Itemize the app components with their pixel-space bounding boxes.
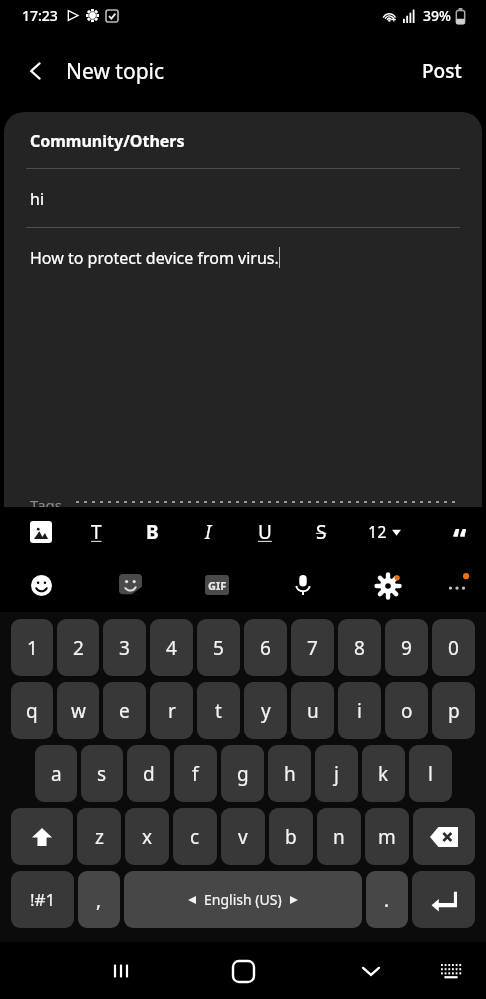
- button[interactable]: Home: [219, 947, 267, 995]
- button[interactable]: Recent apps: [98, 948, 144, 994]
- staticText: 9: [401, 635, 412, 661]
- button[interactable]: e: [103, 682, 146, 739]
- staticText: h: [284, 761, 296, 787]
- staticText: b: [285, 824, 297, 850]
- button[interactable]: 8: [338, 619, 381, 676]
- button[interactable]: u: [291, 682, 334, 739]
- button[interactable]: 3: [103, 619, 146, 676]
- button[interactable]: 5: [197, 619, 240, 676]
- staticText: q: [26, 698, 38, 724]
- staticText: o: [401, 698, 413, 724]
- button[interactable]: Post: [408, 48, 476, 94]
- button[interactable]: v: [221, 808, 265, 865]
- button[interactable]: 12: [362, 515, 407, 549]
- button[interactable]: 6: [244, 619, 287, 676]
- staticText: How to protect device from virus.: [30, 247, 279, 269]
- button[interactable]: Quote: [440, 512, 480, 552]
- button[interactable]: s: [81, 745, 123, 802]
- staticText: S: [316, 519, 327, 545]
- button[interactable]: Shift: [11, 808, 73, 865]
- staticText: e: [119, 698, 130, 724]
- button[interactable]: o: [385, 682, 428, 739]
- staticText: 39%: [423, 6, 451, 25]
- staticText: Post: [422, 58, 462, 84]
- staticText: 4: [166, 635, 177, 661]
- button[interactable]: 0: [432, 619, 475, 676]
- button[interactable]: h: [268, 745, 311, 802]
- button[interactable]: Insert image: [20, 511, 62, 553]
- button[interactable]: T: [75, 511, 117, 553]
- staticText: f: [192, 761, 199, 787]
- button[interactable]: Switch keyboard: [428, 948, 474, 994]
- button[interactable]: Back: [14, 49, 58, 93]
- staticText: v: [238, 824, 248, 850]
- button[interactable]: More options: [436, 564, 478, 606]
- button[interactable]: a: [35, 745, 77, 802]
- button[interactable]: f: [174, 745, 217, 802]
- button[interactable]: Delete: [413, 808, 475, 865]
- staticText: d: [143, 761, 155, 787]
- staticText: j: [334, 761, 339, 787]
- button[interactable]: Enter: [412, 871, 475, 928]
- button[interactable]: j: [315, 745, 358, 802]
- button[interactable]: p: [432, 682, 475, 739]
- staticText: p: [448, 698, 460, 724]
- button[interactable]: B: [131, 511, 173, 553]
- button[interactable]: GIF: [196, 564, 238, 606]
- staticText: n: [333, 824, 345, 850]
- button[interactable]: q: [11, 682, 53, 739]
- button[interactable]: l: [409, 745, 452, 802]
- button[interactable]: k: [362, 745, 405, 802]
- staticText: GIF: [208, 578, 227, 593]
- staticText: 1: [27, 635, 38, 661]
- staticText: c: [190, 824, 200, 850]
- staticText: 12: [368, 521, 387, 543]
- staticText: g: [237, 761, 249, 787]
- button[interactable]: 9: [385, 619, 428, 676]
- button[interactable]: U: [244, 511, 286, 553]
- button[interactable]: Stickers: [109, 564, 151, 606]
- button[interactable]: 4: [150, 619, 193, 676]
- staticText: y: [261, 698, 271, 724]
- button[interactable]: c: [173, 808, 217, 865]
- button[interactable]: d: [127, 745, 170, 802]
- button[interactable]: Hide keyboard: [348, 948, 394, 994]
- staticText: 8: [354, 635, 365, 661]
- staticText: l: [428, 761, 433, 787]
- button[interactable]: I: [187, 511, 229, 553]
- button[interactable]: .: [366, 871, 408, 928]
- button[interactable]: x: [125, 808, 169, 865]
- button[interactable]: 1: [11, 619, 53, 676]
- button[interactable]: Voice input: [282, 564, 324, 606]
- staticText: !#1: [30, 888, 56, 911]
- staticText: m: [378, 824, 396, 850]
- button[interactable]: S: [300, 511, 342, 553]
- button[interactable]: w: [57, 682, 99, 739]
- button[interactable]: 7: [291, 619, 334, 676]
- button[interactable]: Keyboard settings: [368, 564, 410, 606]
- button[interactable]: English (US): [124, 871, 362, 928]
- staticText: k: [378, 761, 389, 787]
- button[interactable]: m: [365, 808, 409, 865]
- button[interactable]: t: [197, 682, 240, 739]
- button[interactable]: Emoji: [20, 564, 62, 606]
- button[interactable]: n: [317, 808, 361, 865]
- staticText: Community/Others: [30, 130, 185, 152]
- staticText: 0: [448, 635, 459, 661]
- staticText: ,: [96, 887, 102, 913]
- button[interactable]: g: [221, 745, 264, 802]
- button[interactable]: r: [150, 682, 193, 739]
- button[interactable]: y: [244, 682, 287, 739]
- staticText: 5: [213, 635, 224, 661]
- staticText: hi: [30, 188, 45, 210]
- button[interactable]: 2: [57, 619, 99, 676]
- button[interactable]: z: [77, 808, 121, 865]
- staticText: z: [95, 824, 104, 850]
- staticText: x: [142, 824, 153, 850]
- staticText: 2: [73, 635, 84, 661]
- button[interactable]: i: [338, 682, 381, 739]
- button[interactable]: !#1: [11, 871, 74, 928]
- button[interactable]: ,: [78, 871, 120, 928]
- staticText: U: [258, 519, 272, 545]
- button[interactable]: b: [269, 808, 313, 865]
